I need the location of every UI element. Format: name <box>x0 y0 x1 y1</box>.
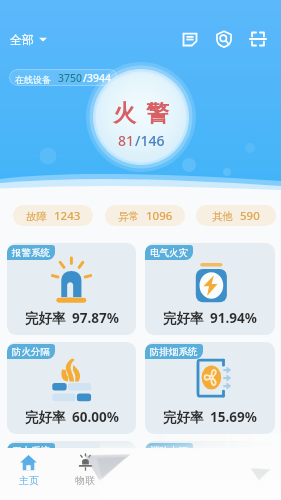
button[interactable]: 异常 <box>105 205 185 226</box>
button[interactable]: 防排烟系统 <box>145 342 275 434</box>
staticText: 火 <box>113 99 136 128</box>
button[interactable]: 主页 <box>0 448 57 500</box>
button[interactable]: 我的 <box>225 448 281 500</box>
staticText: 报警系统 <box>12 247 50 259</box>
staticText: /146 <box>135 131 165 150</box>
button[interactable]: 全部 <box>6 26 51 53</box>
staticText: 91.94% <box>210 309 257 327</box>
button[interactable]: 防火分隔 <box>7 342 136 434</box>
staticText: 主页 <box>19 474 39 487</box>
button[interactable]: 消防水源 <box>145 441 275 500</box>
staticText: 异常 <box>118 210 139 223</box>
staticText: 消防水源 <box>150 445 188 457</box>
button[interactable]: Scan <box>241 22 275 56</box>
staticText: 完好率 <box>25 310 66 327</box>
button[interactable]: 其他 <box>196 205 276 226</box>
button[interactable]: 在线设备 <box>9 69 118 86</box>
staticText: 故障 <box>26 210 47 223</box>
staticText: 完好率 <box>163 409 204 426</box>
staticText: 1096 <box>146 208 173 224</box>
staticText: 警 <box>146 99 169 128</box>
staticText: 电气火灾 <box>150 247 188 259</box>
staticText: /3944 <box>83 71 112 85</box>
staticText: 97.87% <box>72 309 119 327</box>
button[interactable]: Inspection <box>207 22 241 56</box>
staticText: 在线设备 <box>15 74 51 85</box>
staticText: 其他 <box>212 210 233 223</box>
staticText: 590 <box>240 208 260 224</box>
staticText: 防火分隔 <box>12 346 50 358</box>
staticText: 灭火系统 <box>12 445 50 457</box>
staticText: 完好率 <box>25 409 66 426</box>
button[interactable]: 物联 <box>57 448 113 500</box>
staticText: 全部 <box>10 32 34 47</box>
staticText: 防排烟系统 <box>150 346 198 358</box>
button[interactable]: 报警系统 <box>7 243 136 335</box>
staticText: 1243 <box>54 208 81 224</box>
staticText: 60.00% <box>72 408 119 426</box>
staticText: 物联 <box>75 474 95 487</box>
button[interactable]: 电气火灾 <box>145 243 275 335</box>
staticText: 3750 <box>58 71 83 85</box>
button[interactable]: 灭火系统 <box>7 441 136 500</box>
staticText: 完好率 <box>163 310 204 327</box>
staticText: 15.69% <box>210 408 257 426</box>
button[interactable]: 故障 <box>13 205 93 226</box>
button[interactable]: 告警 <box>113 448 169 500</box>
button[interactable]: Reports <box>173 22 207 56</box>
staticText: 我的 <box>243 474 263 487</box>
staticText: 81 <box>118 131 135 150</box>
